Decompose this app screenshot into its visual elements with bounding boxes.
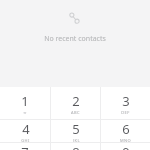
staticText: 4 <box>22 120 30 138</box>
staticText: 7 <box>21 143 29 150</box>
button[interactable]: 8 <box>51 143 100 150</box>
staticText: 9 <box>122 143 130 150</box>
button[interactable]: 7 <box>0 143 50 150</box>
staticText: 6 <box>122 120 130 138</box>
button[interactable]: 3 <box>101 87 150 119</box>
button[interactable]: 4 <box>0 120 50 142</box>
staticText: ∞ <box>23 110 27 115</box>
button[interactable]: 9 <box>101 143 150 150</box>
staticText: 1 <box>21 92 29 110</box>
staticText: No recent contacts <box>44 34 106 44</box>
staticText: GHI <box>21 138 30 142</box>
other: No recent contacts <box>67 11 83 27</box>
staticText: JKL <box>73 138 80 142</box>
button[interactable]: 2 <box>51 87 100 119</box>
staticText: MNO <box>120 138 131 142</box>
staticText: 3 <box>122 92 130 110</box>
staticText: 5 <box>72 120 80 138</box>
button[interactable]: 5 <box>51 120 100 142</box>
button[interactable]: 6 <box>101 120 150 142</box>
button[interactable]: 1 <box>0 87 50 119</box>
staticText: 2 <box>72 92 80 110</box>
staticText: 8 <box>72 143 80 150</box>
staticText: DEF <box>121 110 130 115</box>
staticText: ABC <box>71 110 80 115</box>
